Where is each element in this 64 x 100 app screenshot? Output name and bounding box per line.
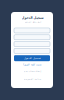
- staticText: تسجيل الدخول: [21, 16, 43, 19]
- staticText: نسيت كلمة المرور؟: [22, 63, 41, 66]
- button[interactable]: Text field: [14, 48, 50, 53]
- button[interactable]: Text field: [14, 42, 50, 47]
- button[interactable]: سياسة الخصوصية: [23, 78, 41, 80]
- button[interactable]: تسجيل الدخول: [14, 55, 50, 61]
- button[interactable]: نسيت كلمة المرور؟: [22, 63, 41, 66]
- button[interactable]: Text field: [14, 35, 50, 40]
- staticText: تسجيل الدخول: [23, 57, 40, 60]
- button[interactable]: إنشاء حساب جديد: [23, 70, 41, 72]
- staticText: إنشاء حساب جديد: [23, 70, 41, 72]
- staticText: سياسة الخصوصية: [23, 78, 41, 80]
- button[interactable]: Text field: [14, 28, 50, 33]
- staticText: أدخل بياناتك للمتابعة: [24, 21, 40, 23]
